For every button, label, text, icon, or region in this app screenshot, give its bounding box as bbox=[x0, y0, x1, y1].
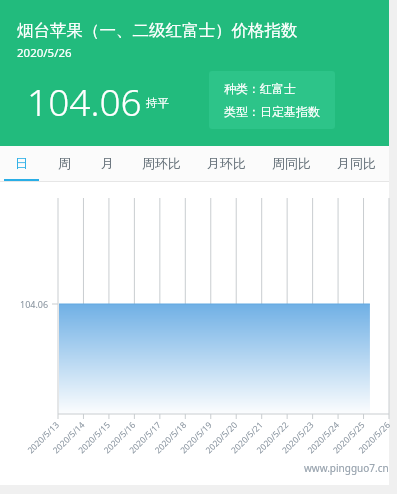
staticText: 月 bbox=[101, 155, 114, 171]
staticText: 类型：日定基指数 bbox=[224, 104, 320, 119]
button[interactable]: 月 bbox=[86, 146, 129, 182]
staticText: 种类：红富士 bbox=[224, 81, 296, 96]
staticText: 持平 bbox=[146, 96, 169, 110]
staticText: 104.06 bbox=[27, 76, 142, 126]
staticText: 周环比 bbox=[142, 155, 181, 171]
button[interactable]: 月同比 bbox=[324, 146, 389, 182]
staticText: 烟台苹果（一、二级红富士）价格指数 bbox=[17, 20, 298, 41]
button[interactable]: 日 bbox=[0, 146, 43, 182]
button[interactable]: 周 bbox=[43, 146, 86, 182]
button[interactable]: 周环比 bbox=[129, 146, 194, 182]
staticText: 月同比 bbox=[337, 155, 376, 171]
staticText: 日 bbox=[15, 155, 28, 171]
staticText: 月环比 bbox=[207, 155, 246, 171]
staticText: 周同比 bbox=[272, 155, 311, 171]
staticText: 2020/5/26 bbox=[17, 45, 72, 61]
button[interactable]: 周同比 bbox=[259, 146, 324, 182]
button[interactable]: 月环比 bbox=[194, 146, 259, 182]
staticText: 周 bbox=[58, 155, 71, 171]
